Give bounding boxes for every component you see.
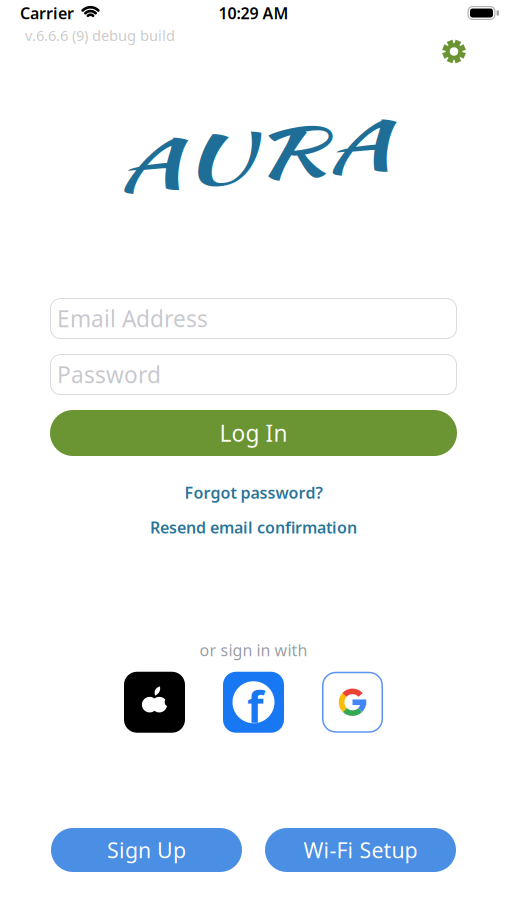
- button[interactable]: Wi-Fi Setup: [265, 828, 456, 872]
- staticText: Log In: [219, 418, 287, 448]
- staticText: Wi-Fi Setup: [303, 836, 417, 864]
- staticText: v.6.6.6 (9) debug build: [25, 25, 175, 45]
- staticText: Email Address: [57, 303, 208, 333]
- button[interactable]: Forgot password?: [184, 482, 322, 503]
- staticText: Sign Up: [107, 836, 186, 864]
- button[interactable]: Email Address: [50, 298, 457, 339]
- staticText: AURA: [151, 99, 356, 211]
- button[interactable]: Sign in with Apple: [124, 672, 185, 733]
- staticText: f: [247, 678, 264, 735]
- staticText: 10:29 AM: [218, 2, 288, 24]
- button[interactable]: Sign in with Facebook: [223, 672, 284, 733]
- button[interactable]: Sign in with Google: [322, 672, 383, 733]
- staticText: Carrier: [20, 2, 74, 24]
- button[interactable]: Sign Up: [51, 828, 242, 872]
- staticText: or sign in with: [199, 639, 307, 661]
- staticText: Forgot password?: [184, 482, 322, 503]
- button[interactable]: Password: [50, 354, 457, 395]
- button[interactable]: Settings: [442, 28, 507, 63]
- staticText: Resend email confirmation: [150, 517, 357, 538]
- staticText: Password: [57, 359, 161, 389]
- button[interactable]: Log In: [50, 410, 457, 456]
- button[interactable]: Resend email confirmation: [150, 517, 357, 538]
